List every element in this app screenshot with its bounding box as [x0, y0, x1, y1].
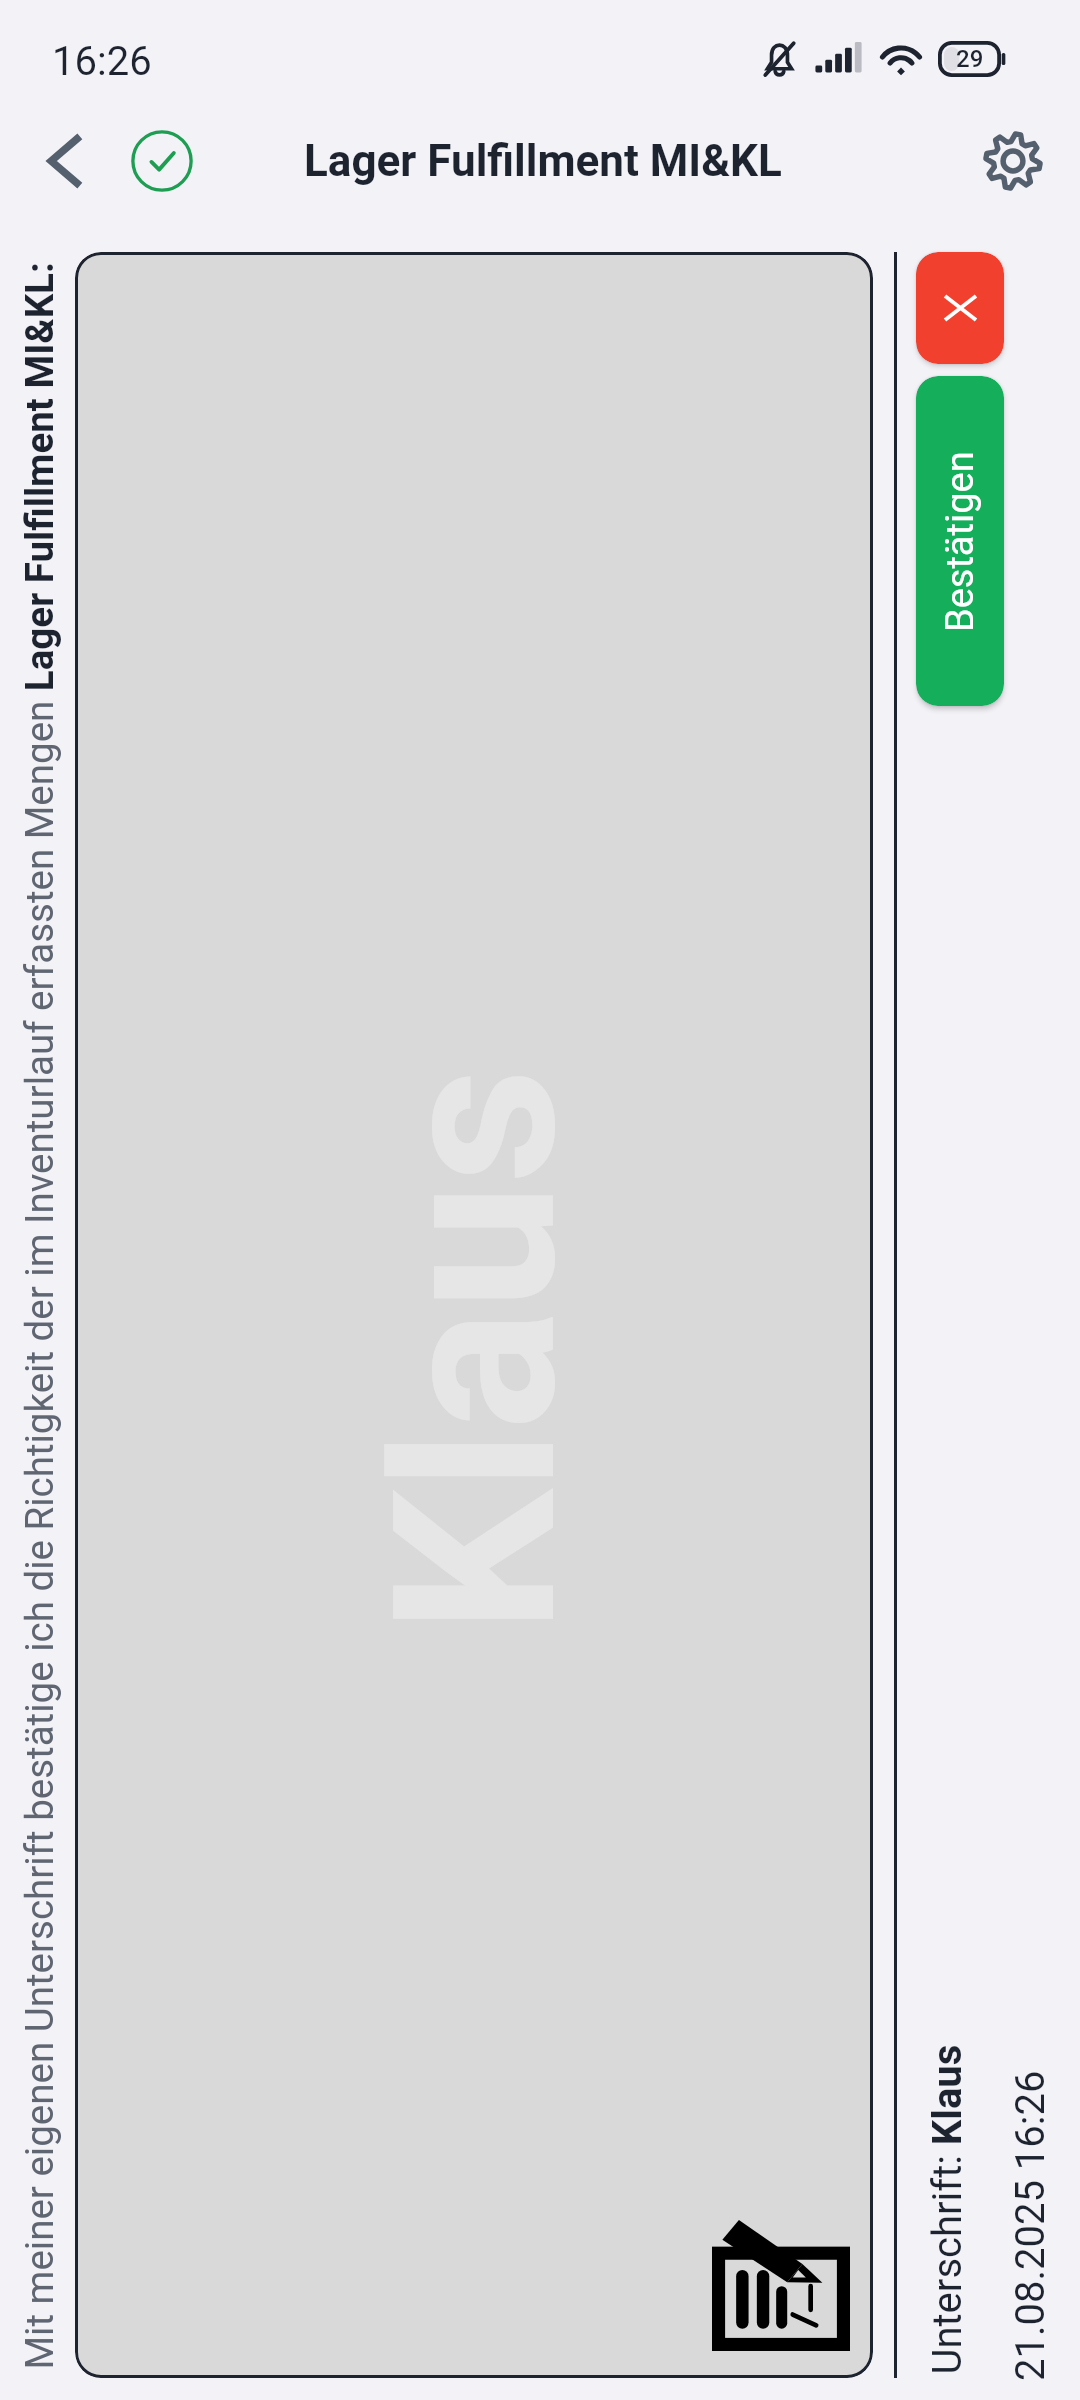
button[interactable]: Abbrechen	[916, 252, 1004, 364]
button[interactable]: Settings	[968, 116, 1058, 206]
button[interactable]: Signature pad	[75, 252, 873, 2378]
staticText: Bestätigen	[938, 451, 983, 632]
button[interactable]: Back	[20, 116, 110, 206]
button[interactable]: Confirmed	[117, 116, 207, 206]
staticText: Unterschrift: Klaus	[923, 2044, 970, 2374]
staticText: Mit meiner eigenen Unterschrift bestätig…	[16, 261, 61, 2369]
staticText: Lager Fulfillment MI&KL	[304, 135, 782, 187]
staticText: 16:26	[52, 38, 152, 85]
staticText: Klaus	[344, 1067, 608, 1633]
staticText: 21.08.2025 16:26	[1007, 2070, 1054, 2381]
button[interactable]: Bestätigen	[916, 376, 1004, 706]
staticText: 29	[956, 45, 984, 73]
